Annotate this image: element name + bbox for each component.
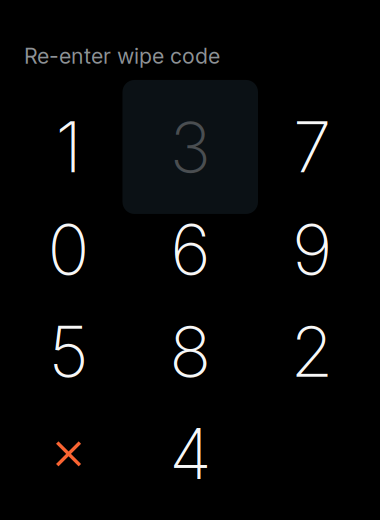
staticText: 4 xyxy=(169,412,211,496)
staticText: 2 xyxy=(290,310,333,393)
staticText: Re-enter wipe code xyxy=(24,43,220,69)
button[interactable]: 3 xyxy=(129,96,251,198)
staticText: 0 xyxy=(48,207,90,291)
staticText: 9 xyxy=(292,207,332,291)
button[interactable]: 5 xyxy=(8,300,129,403)
button[interactable]: 8 xyxy=(129,300,251,403)
staticText: 6 xyxy=(170,207,210,291)
staticText: 1 xyxy=(56,105,82,189)
staticText: 7 xyxy=(293,105,331,189)
button[interactable]: 0 xyxy=(8,198,129,300)
button[interactable]: Cancel xyxy=(8,403,129,505)
button[interactable]: 2 xyxy=(251,300,373,403)
button[interactable]: 9 xyxy=(251,198,373,300)
button[interactable]: 7 xyxy=(251,96,373,198)
button[interactable]: 4 xyxy=(129,403,251,505)
staticText: 5 xyxy=(49,310,89,393)
button[interactable]: 6 xyxy=(129,198,251,300)
staticText: 8 xyxy=(169,310,211,393)
staticText: 3 xyxy=(170,105,211,189)
button[interactable]: 1 xyxy=(8,96,129,198)
